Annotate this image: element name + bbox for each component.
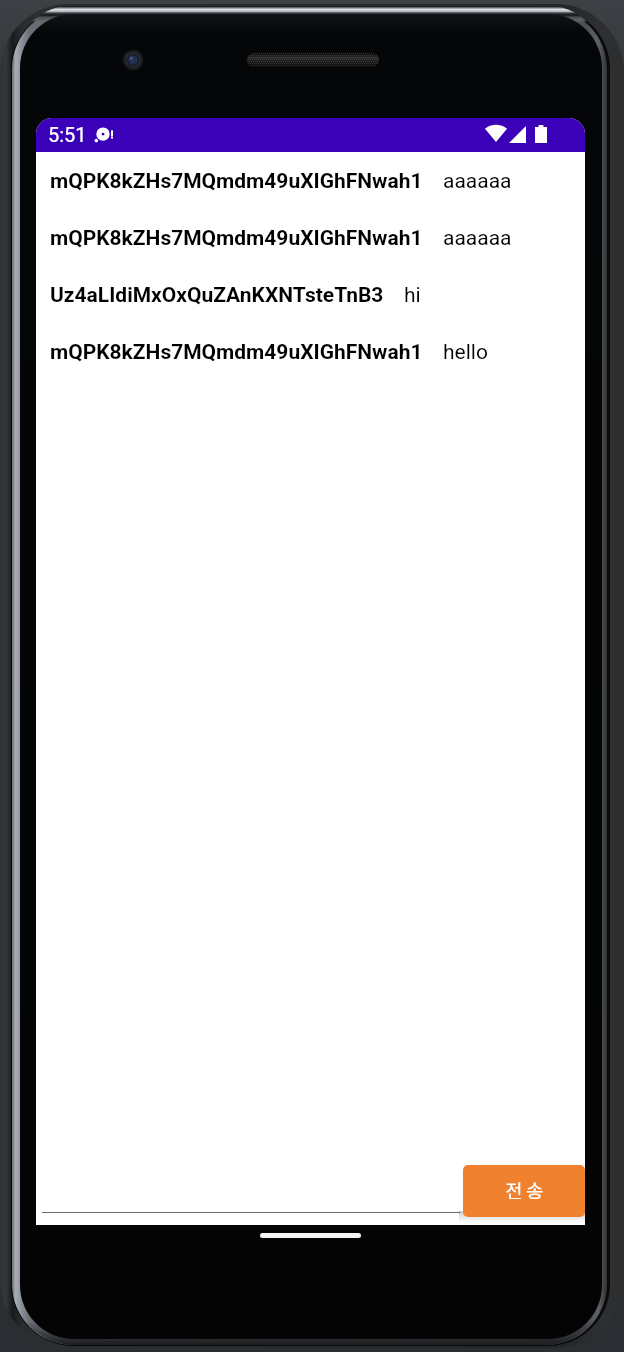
other: Wi-Fi — [485, 125, 507, 142]
staticText: 5:51 — [48, 123, 87, 146]
button[interactable]: 전송 — [463, 1165, 585, 1217]
other: Notifications — [90, 122, 114, 146]
button[interactable]: mQPK8kZHs7MQmdm49uXIGhFNwah1 — [36, 210, 585, 267]
staticText: hello — [443, 340, 488, 365]
button[interactable]: mQPK8kZHs7MQmdm49uXIGhFNwah1 — [36, 153, 585, 210]
staticText: mQPK8kZHs7MQmdm49uXIGhFNwah1 — [50, 226, 423, 251]
staticText: 전송 — [505, 1176, 547, 1204]
staticText: Uz4aLIdiMxOxQuZAnKXNTsteTnB3 — [50, 283, 384, 308]
staticText: aaaaaa — [443, 169, 512, 194]
staticText: aaaaaa — [443, 226, 512, 251]
button[interactable]: mQPK8kZHs7MQmdm49uXIGhFNwah1 — [36, 324, 585, 381]
button[interactable]: Uz4aLIdiMxOxQuZAnKXNTsteTnB3 — [36, 267, 585, 324]
other: Mobile signal — [509, 126, 526, 143]
staticText: hi — [404, 283, 421, 308]
other: Battery — [535, 125, 547, 143]
staticText: mQPK8kZHs7MQmdm49uXIGhFNwah1 — [50, 169, 423, 194]
staticText: mQPK8kZHs7MQmdm49uXIGhFNwah1 — [50, 340, 423, 365]
